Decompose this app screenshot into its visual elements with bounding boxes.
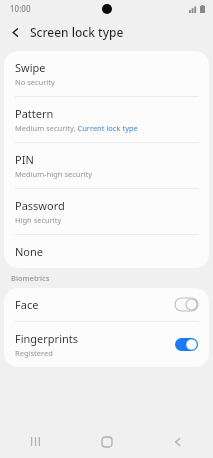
- button[interactable]: Swipe: [4, 51, 209, 96]
- button[interactable]: None: [4, 235, 209, 268]
- button[interactable]: Face: [4, 288, 209, 321]
- staticText: Swipe: [15, 60, 46, 75]
- staticText: Pattern: [15, 106, 54, 121]
- staticText: Biometrics: [11, 273, 50, 283]
- staticText: None: [15, 244, 44, 259]
- button[interactable]: Back: [142, 425, 213, 458]
- button[interactable]: Password: [4, 189, 209, 234]
- button[interactable]: Recents: [0, 425, 71, 458]
- button[interactable]: PIN: [4, 143, 209, 188]
- staticText: Fingerprints: [15, 331, 79, 346]
- button[interactable]: On: [175, 338, 198, 351]
- staticText: No security: [15, 77, 55, 87]
- staticText: Medium security, Current lock type: [15, 123, 138, 133]
- staticText: High security: [15, 215, 62, 225]
- button[interactable]: Off: [175, 298, 198, 311]
- button[interactable]: Back: [0, 17, 30, 47]
- staticText: Screen lock type: [30, 24, 124, 40]
- staticText: 10:00: [10, 3, 31, 14]
- button[interactable]: Fingerprints: [4, 322, 209, 367]
- button[interactable]: Home: [71, 425, 142, 458]
- staticText: Password: [15, 198, 65, 213]
- button[interactable]: Pattern: [4, 97, 209, 142]
- staticText: Face: [15, 297, 39, 312]
- staticText: Registered: [15, 348, 53, 358]
- staticText: Medium-high security: [15, 169, 93, 179]
- staticText: PIN: [15, 152, 34, 167]
